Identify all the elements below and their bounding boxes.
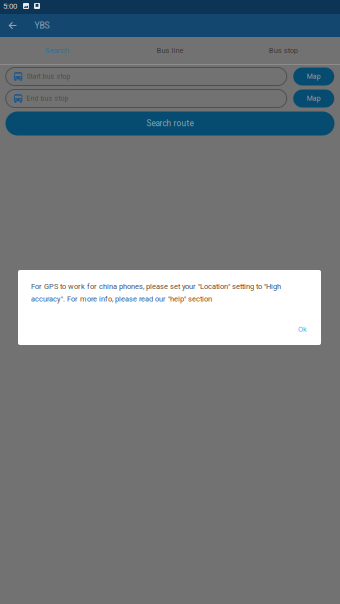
staticText: Search: [45, 46, 69, 55]
staticText: Map: [307, 72, 321, 80]
staticText: End bus stop: [26, 94, 68, 102]
staticText: Search route: [146, 119, 193, 128]
button[interactable]: Back: [0, 14, 25, 37]
button[interactable]: Start bus stop: [6, 67, 287, 85]
staticText: Start bus stop: [26, 72, 70, 80]
button[interactable]: End bus stop: [6, 89, 287, 107]
button[interactable]: Map: [293, 67, 334, 85]
staticText: Bus line: [156, 46, 183, 55]
staticText: Map: [307, 94, 321, 102]
button[interactable]: Bus stop: [227, 37, 340, 64]
button[interactable]: Bus line: [113, 37, 227, 64]
staticText: Ok: [298, 325, 307, 333]
button[interactable]: Search route: [5, 111, 334, 135]
staticText: YBS: [34, 20, 49, 31]
button[interactable]: Search: [0, 37, 113, 64]
staticText: Bus stop: [269, 46, 298, 55]
button[interactable]: Map: [293, 89, 334, 107]
button[interactable]: Ok: [288, 317, 321, 345]
staticText: For GPS to work for china phones, please…: [31, 282, 281, 303]
staticText: 5:00: [3, 1, 17, 11]
